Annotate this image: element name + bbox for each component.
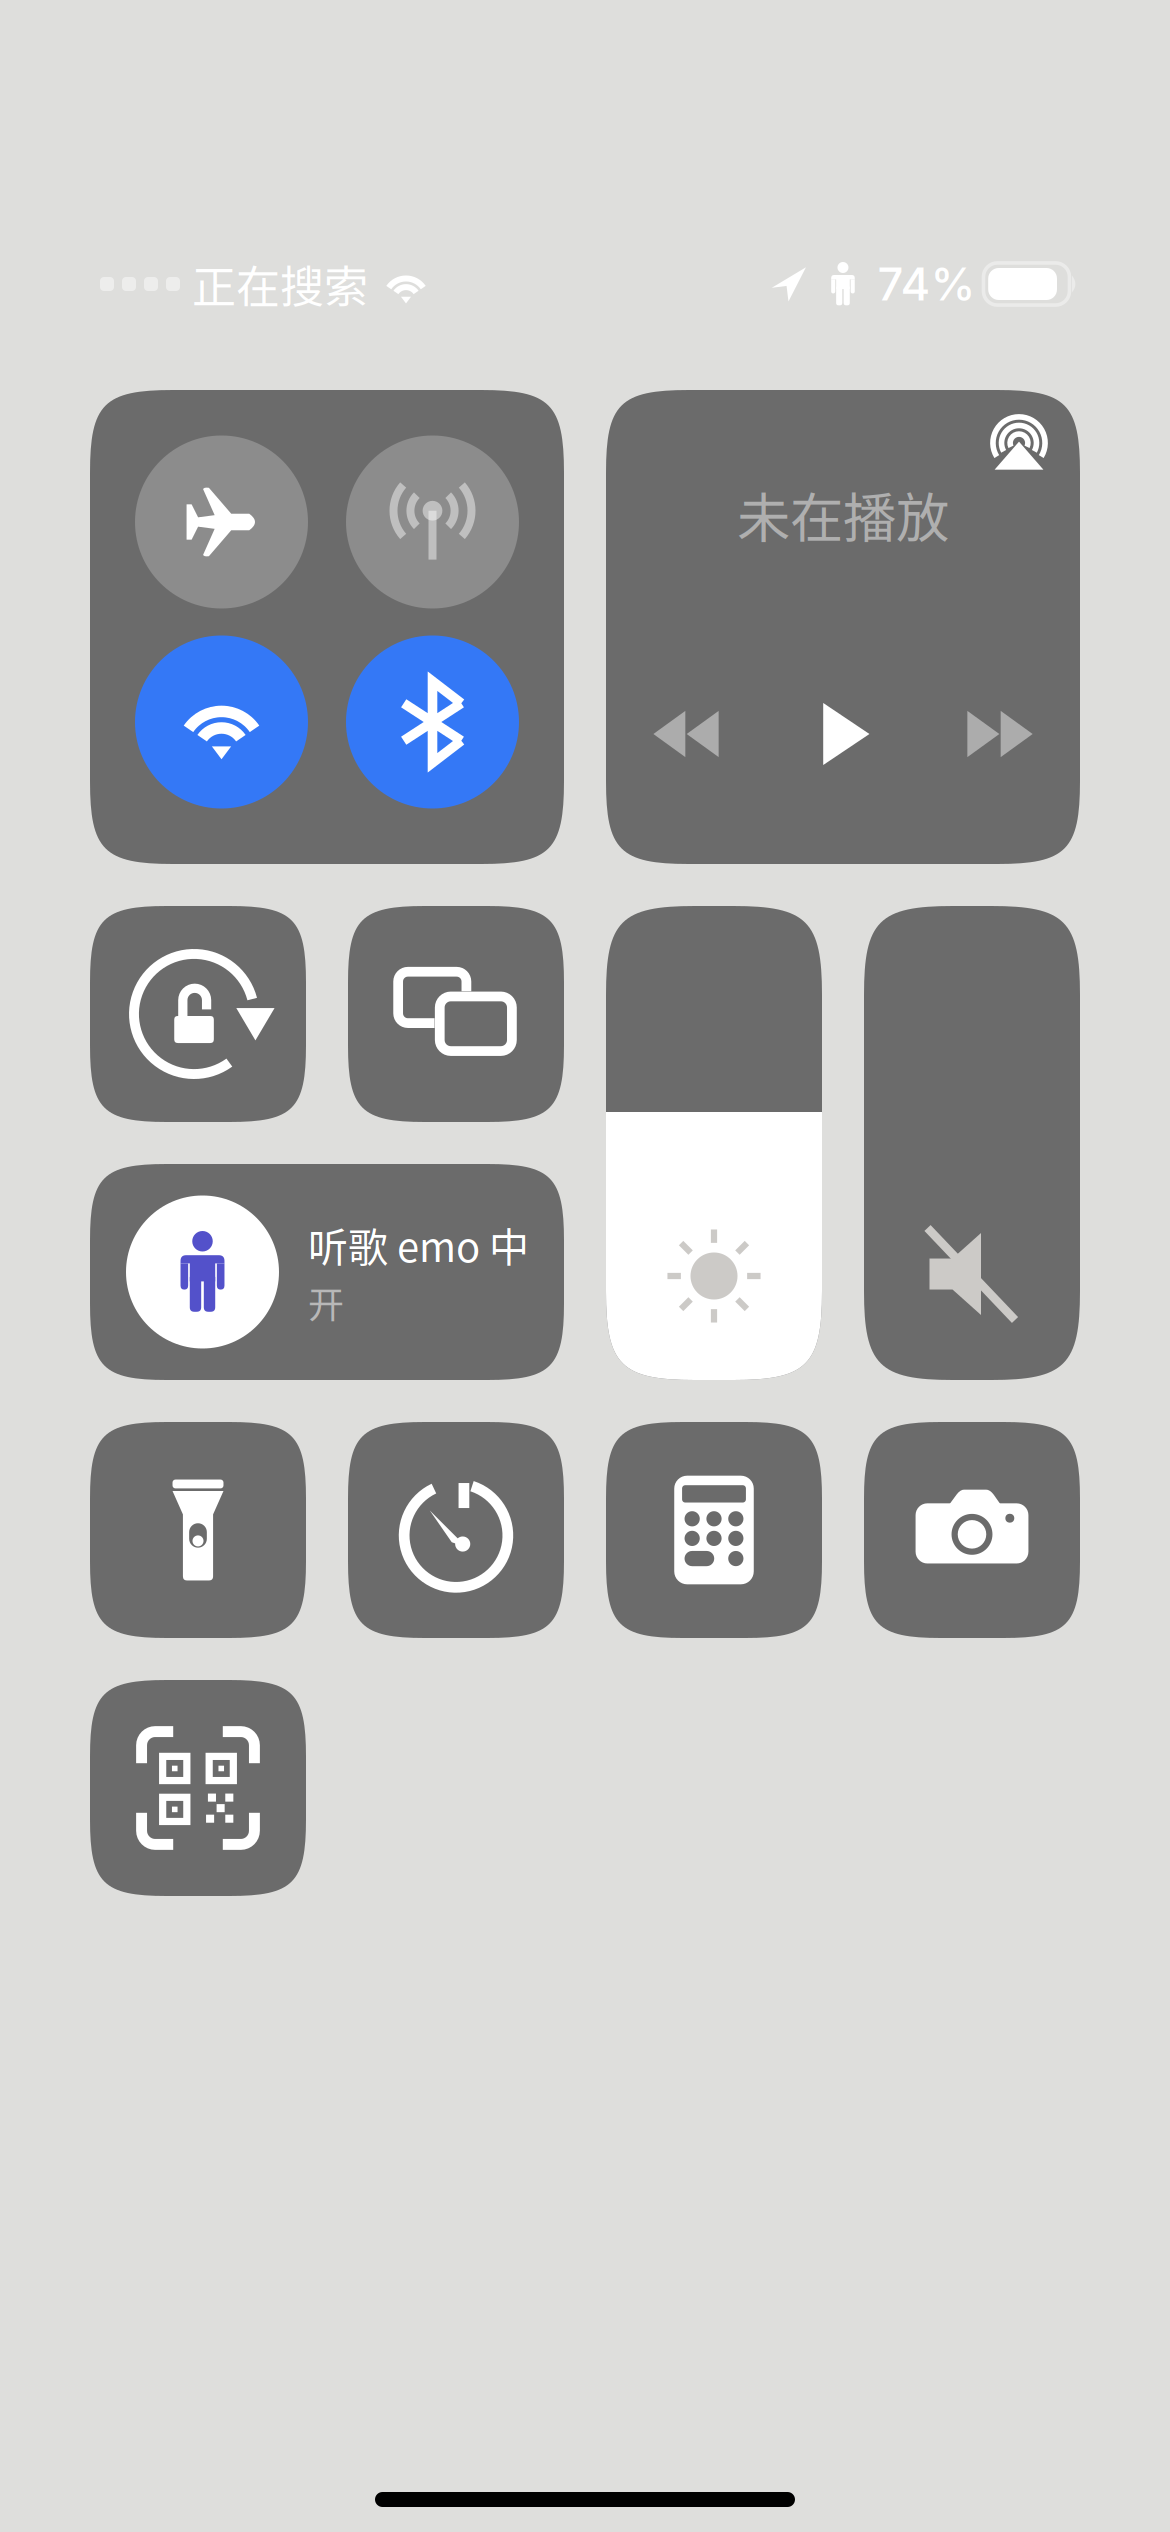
button[interactable]: Rotation Lock xyxy=(90,906,306,1122)
button[interactable]: Next Track xyxy=(966,700,1034,768)
button[interactable]: Screen Mirroring xyxy=(348,906,564,1122)
button[interactable]: 听歌 emo 中, 开 xyxy=(90,1164,564,1380)
button[interactable]: Previous Track xyxy=(652,700,720,768)
button[interactable]: Airplane Mode xyxy=(135,435,308,608)
staticText: 74% xyxy=(877,257,975,311)
staticText: 未在播放 xyxy=(737,476,949,553)
button[interactable]: Brightness xyxy=(606,906,822,1380)
button[interactable]: Play xyxy=(810,700,876,768)
staticText: 听歌 emo 中 xyxy=(308,1215,529,1273)
button[interactable]: Wi-Fi xyxy=(135,635,308,808)
button[interactable]: Calculator xyxy=(606,1422,822,1638)
button[interactable]: Flashlight xyxy=(90,1422,306,1638)
button[interactable]: AirPlay xyxy=(986,406,1052,472)
button[interactable]: Timer xyxy=(348,1422,564,1638)
button[interactable]: Cellular Data xyxy=(346,435,519,608)
staticText: 正在搜索 xyxy=(192,252,368,316)
button[interactable]: Scan QR Code xyxy=(90,1680,306,1896)
staticText: 开 xyxy=(308,1276,344,1328)
button[interactable]: Bluetooth xyxy=(346,635,519,808)
button[interactable]: Volume xyxy=(864,906,1080,1380)
button[interactable]: Camera xyxy=(864,1422,1080,1638)
